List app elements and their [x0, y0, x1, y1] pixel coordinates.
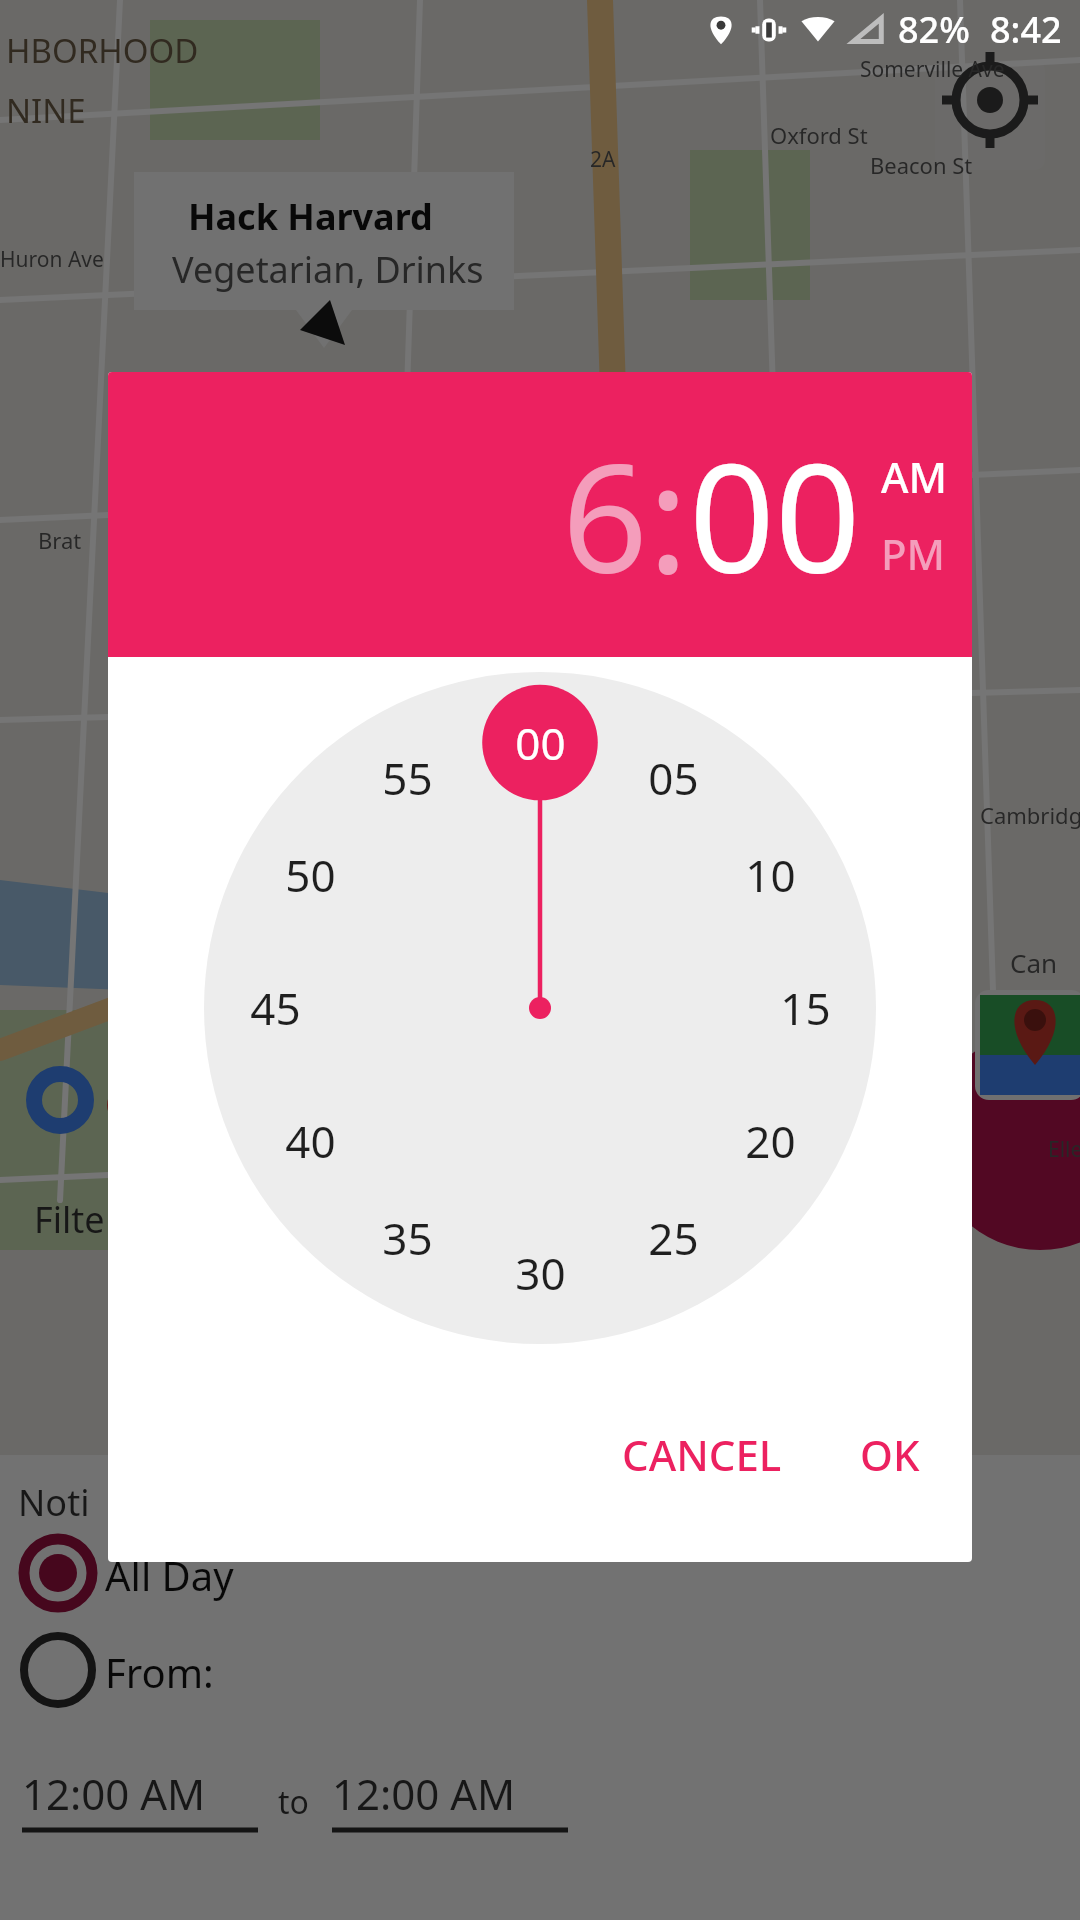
staticText: HBORHOOD — [6, 28, 199, 73]
button[interactable]: CANCEL — [600, 1412, 804, 1497]
staticText: NINE — [6, 88, 86, 133]
staticText: OK — [860, 1426, 920, 1483]
staticText: Somerville Ave — [860, 55, 1005, 84]
staticText: 00 — [515, 713, 566, 773]
button[interactable]: PM — [881, 525, 946, 582]
staticText: 35 — [382, 1208, 433, 1268]
staticText: 25 — [648, 1208, 699, 1268]
staticText: CANCEL — [622, 1426, 782, 1483]
button[interactable]: 6 — [562, 413, 861, 617]
button[interactable]: AM — [881, 448, 948, 505]
staticText: Beacon St — [870, 150, 973, 180]
staticText: Noti — [18, 1478, 90, 1527]
staticText: : — [648, 413, 689, 617]
staticText: 8:42 — [990, 5, 1062, 54]
staticText: Ellery — [1048, 1135, 1080, 1164]
staticText: AM — [881, 448, 948, 505]
staticText: 12:00 AM — [332, 1765, 516, 1822]
button[interactable]: OK — [838, 1412, 942, 1497]
staticText: Cambridg — [980, 800, 1080, 830]
staticText: Filte — [34, 1195, 105, 1244]
staticText: Hack Harvard — [188, 192, 433, 241]
staticText: 2A — [590, 145, 616, 174]
staticText: 10 — [745, 845, 796, 905]
staticText: to — [278, 1780, 309, 1824]
staticText: Oxford St — [770, 120, 868, 150]
button[interactable]: Minute selector — [204, 672, 876, 1344]
staticText: 15 — [780, 978, 831, 1038]
staticText: 55 — [382, 748, 433, 808]
staticText: 6 — [562, 413, 648, 617]
staticText: Can — [1010, 945, 1058, 980]
staticText: PM — [881, 525, 946, 582]
staticText: All Day — [105, 1548, 234, 1602]
staticText: 50 — [285, 845, 336, 905]
staticText: 30 — [515, 1243, 566, 1303]
staticText: Brat — [38, 525, 82, 555]
staticText: 20 — [745, 1111, 796, 1171]
staticText: Vegetarian, Drinks — [172, 245, 484, 294]
staticText: 00 — [689, 413, 861, 617]
staticText: 12:00 AM — [22, 1765, 206, 1822]
staticText: 82% — [898, 5, 970, 54]
staticText: 40 — [285, 1111, 336, 1171]
staticText: 05 — [648, 748, 699, 808]
staticText: From: — [105, 1645, 214, 1699]
staticText: Huron Ave — [0, 245, 104, 274]
staticText: 45 — [250, 978, 301, 1038]
